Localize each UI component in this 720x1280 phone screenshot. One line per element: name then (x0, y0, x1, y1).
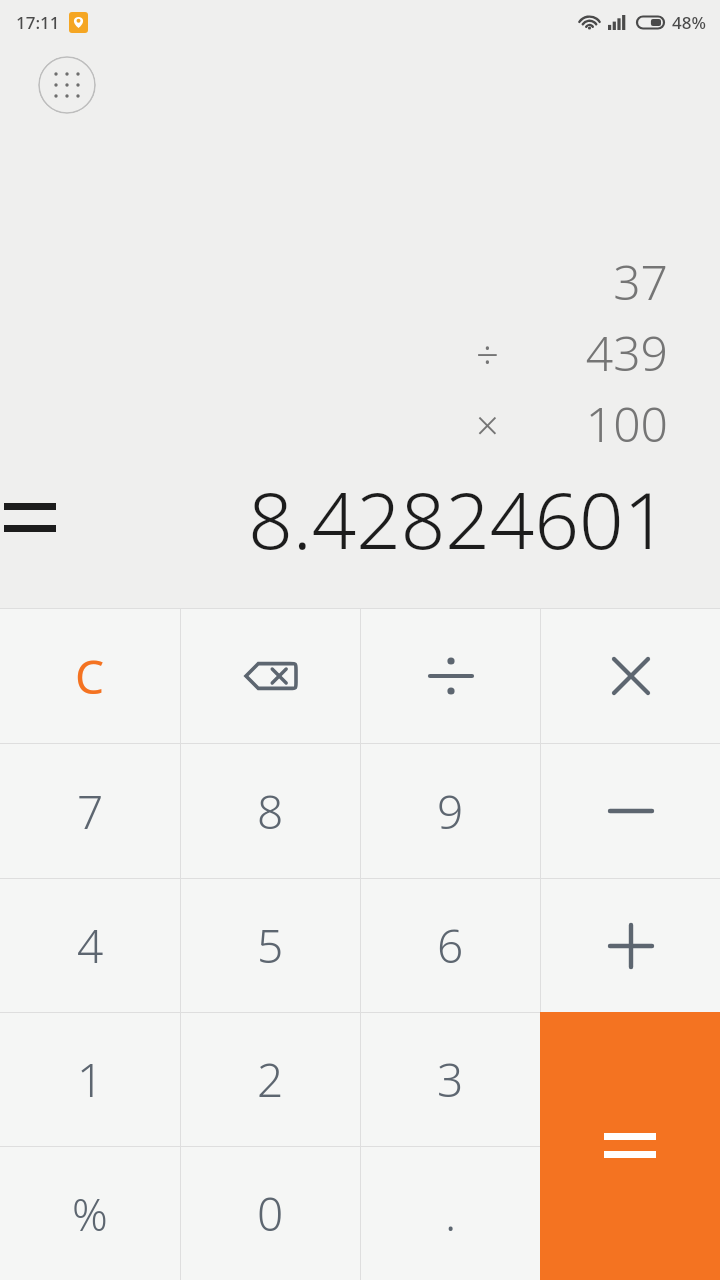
button[interactable]: Minus (541, 744, 720, 878)
button[interactable]: Multiply (541, 609, 720, 743)
button[interactable]: 8 (181, 744, 360, 878)
staticText: 2 (257, 1048, 284, 1111)
staticText: 4 (77, 914, 104, 977)
staticText: ÷ (476, 326, 499, 380)
other: Backspace (242, 656, 300, 696)
staticText: 48% (672, 11, 706, 34)
staticText: 5 (257, 914, 284, 977)
other: Plus (607, 922, 655, 970)
button[interactable]: 3 (361, 1013, 540, 1146)
staticText: 100 (585, 391, 668, 456)
staticText: 8.42824601 (248, 466, 668, 572)
button[interactable]: Divide (361, 609, 540, 743)
button[interactable]: 4 (0, 879, 180, 1012)
button[interactable]: 6 (361, 879, 540, 1012)
button[interactable]: 0 (181, 1147, 360, 1280)
staticText: % (72, 1184, 108, 1244)
other: Multiply (607, 652, 655, 700)
staticText: 3 (437, 1048, 464, 1111)
button[interactable]: 5 (181, 879, 360, 1012)
staticText: 9 (437, 780, 464, 843)
staticText: 7 (77, 780, 104, 843)
staticText: 17:11 (16, 11, 60, 34)
button[interactable]: 1 (0, 1013, 180, 1146)
button[interactable]: Equals (540, 1012, 720, 1280)
staticText: 0 (257, 1182, 284, 1245)
staticText: 6 (437, 914, 464, 977)
button[interactable]: % (0, 1147, 180, 1280)
staticText: 8 (257, 780, 284, 843)
button[interactable]: Backspace (181, 609, 360, 743)
staticText: 37 (613, 249, 668, 314)
other: Divide (427, 652, 475, 700)
staticText: 439 (585, 320, 668, 385)
staticText: 1 (77, 1048, 104, 1111)
button[interactable]: 9 (361, 744, 540, 878)
staticText: . (445, 1182, 457, 1245)
staticText: × (476, 397, 499, 451)
button[interactable]: Clear (0, 609, 180, 743)
button[interactable]: Menu (38, 56, 96, 114)
button[interactable]: Plus (541, 879, 720, 1012)
staticText: C (75, 645, 105, 708)
other: Clear (75, 645, 105, 708)
button[interactable]: 7 (0, 744, 180, 878)
other: Minus (607, 787, 655, 835)
button[interactable]: . (361, 1147, 540, 1280)
button[interactable]: 2 (181, 1013, 360, 1146)
